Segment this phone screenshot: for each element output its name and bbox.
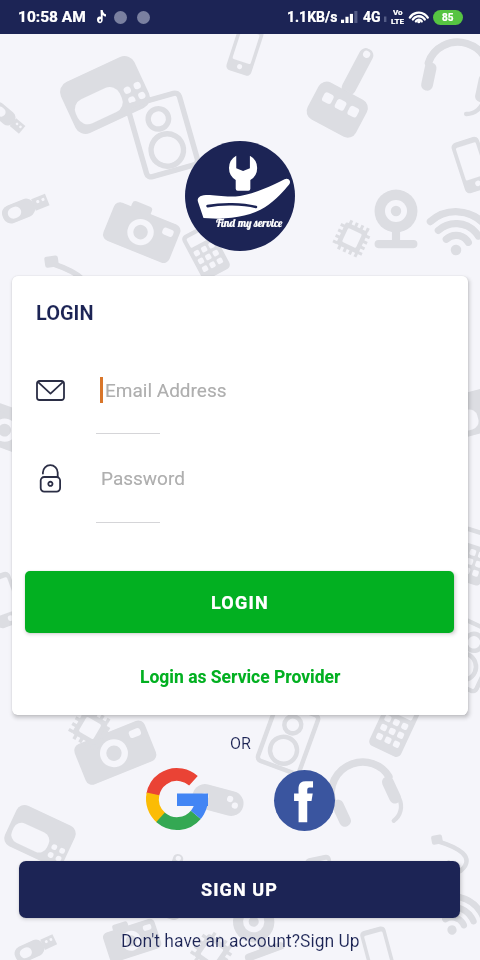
button[interactable]: Sign in with Google [142, 764, 212, 834]
button[interactable]: Login as Service Provider [0, 660, 480, 694]
staticText: 4G [363, 9, 381, 25]
staticText: Vo [393, 8, 403, 17]
button[interactable]: LOGIN [25, 571, 454, 633]
staticText: Login as Service Provider [140, 667, 341, 688]
staticText: 10:58 AM [18, 8, 86, 26]
staticText: SIGN UP [201, 879, 278, 900]
button[interactable]: Sign in with Facebook [269, 765, 339, 835]
staticText: 85 [442, 12, 454, 24]
button[interactable]: Don't have an account?Sign Up [0, 926, 480, 956]
staticText: Email Address [105, 379, 227, 401]
staticText: OR [230, 734, 251, 753]
staticText: LTE [391, 17, 404, 26]
staticText: LOGIN [211, 592, 269, 613]
staticText: Find my service [215, 216, 283, 230]
staticText: LOGIN [36, 301, 94, 324]
staticText: Don't have an account?Sign Up [121, 931, 360, 952]
staticText: 1.1KB/s [287, 9, 338, 25]
button[interactable]: SIGN UP [19, 861, 460, 918]
staticText: Password [101, 467, 185, 489]
